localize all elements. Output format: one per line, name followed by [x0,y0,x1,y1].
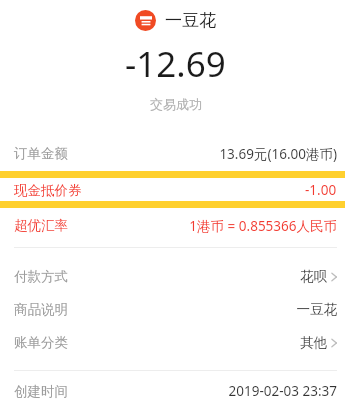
button[interactable]: 账单分类 [0,326,351,359]
button[interactable]: 现金抵价券 [0,178,345,201]
button[interactable]: 订单金额 [0,136,351,171]
staticText: 其他 [300,334,327,351]
staticText: 付款方式 [14,268,68,285]
staticText: 一豆花 [165,10,216,31]
button[interactable]: Merchant logo [0,10,351,31]
staticText: 现金抵价券 [14,182,82,199]
button[interactable]: 超优汇率 [0,208,351,243]
button[interactable]: 商品说明 [0,293,351,326]
staticText: 交易成功 [150,96,202,112]
staticText: 创建时间 [14,383,68,400]
staticText: -12.69 [125,40,226,88]
staticText: 商品说明 [14,301,68,318]
staticText: 2019-02-03 23:37 [228,382,337,400]
staticText: 账单分类 [14,334,68,351]
staticText: 花呗 [300,268,327,285]
button[interactable]: 创建时间 [0,382,351,400]
staticText: 13.69元(16.00港币) [219,145,337,163]
staticText: 一豆花 [296,301,337,318]
button[interactable]: 付款方式 [0,260,351,293]
staticText: 订单金额 [14,145,68,162]
staticText: 超优汇率 [14,217,68,234]
other: Merchant logo [135,10,156,31]
staticText: 1港币 = 0.855366人民币 [189,217,337,235]
staticText: -1.00 [305,181,337,199]
